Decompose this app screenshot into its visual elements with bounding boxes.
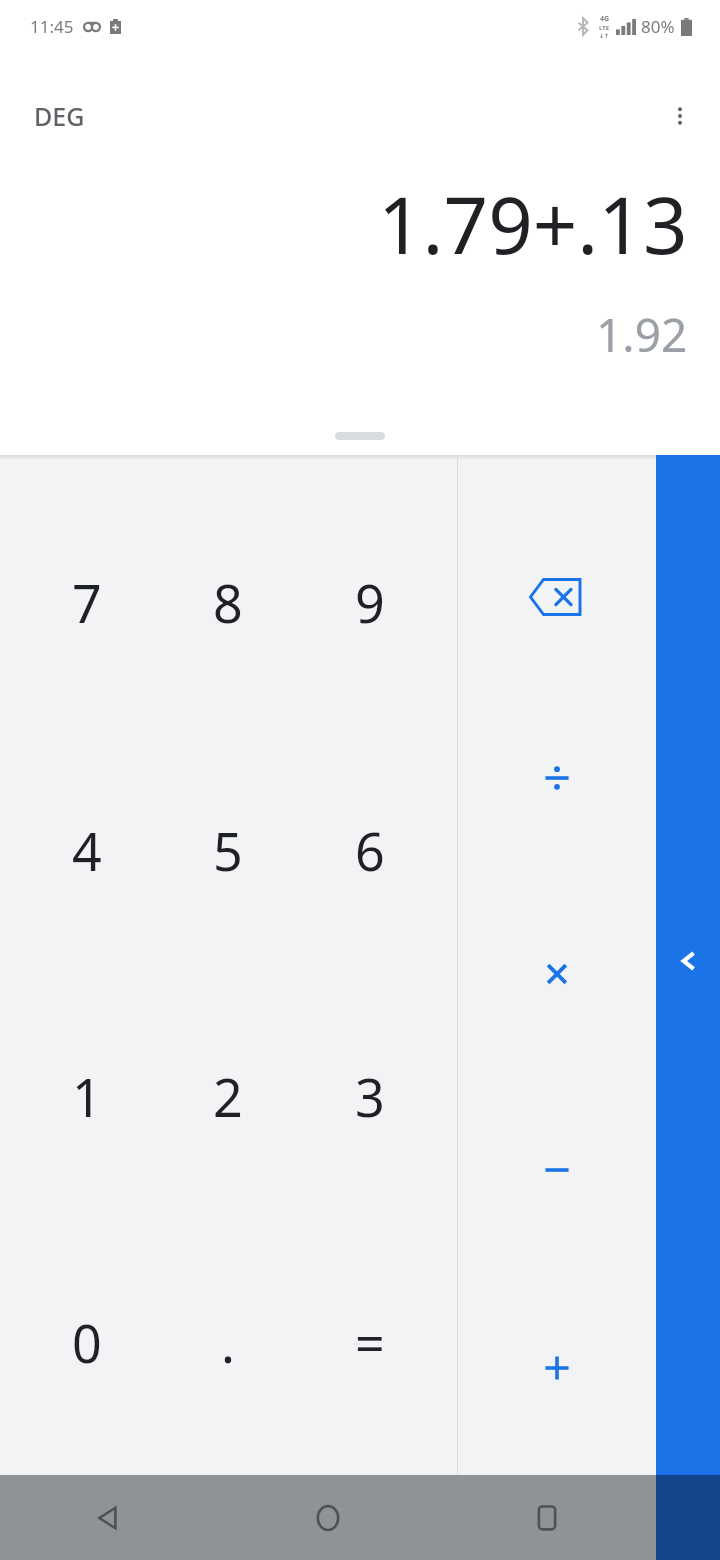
staticText: . xyxy=(221,1307,235,1378)
button[interactable]: Home xyxy=(218,1475,437,1560)
staticText: 9 xyxy=(355,567,385,638)
button[interactable]: Divide xyxy=(507,728,607,828)
button[interactable]: 5 xyxy=(169,791,287,909)
staticText: 5 xyxy=(213,815,243,886)
button[interactable]: . xyxy=(169,1283,287,1401)
button[interactable]: Plus xyxy=(507,1318,607,1418)
staticText: 8 xyxy=(213,567,243,638)
staticText: ↓↑ xyxy=(599,32,610,39)
button[interactable]: Show advanced pad xyxy=(656,455,720,1475)
staticText: 1.79+.13 xyxy=(378,171,688,277)
button[interactable]: Delete xyxy=(507,547,607,647)
button[interactable]: Multiply xyxy=(507,924,607,1024)
button[interactable]: Recents xyxy=(437,1475,656,1560)
staticText: 0 xyxy=(72,1307,102,1378)
button[interactable]: Minus xyxy=(507,1120,607,1220)
button[interactable]: 1 xyxy=(28,1037,146,1155)
button[interactable]: = xyxy=(311,1283,429,1401)
staticText: LTE xyxy=(599,24,610,32)
button[interactable]: 7 xyxy=(28,543,146,661)
staticText: = xyxy=(355,1307,385,1378)
button[interactable]: More options xyxy=(656,92,704,140)
button[interactable]: 4 xyxy=(28,791,146,909)
staticText: 3 xyxy=(355,1061,385,1132)
button[interactable]: 8 xyxy=(169,543,287,661)
button[interactable]: 6 xyxy=(311,791,429,909)
staticText: 6 xyxy=(355,815,385,886)
staticText: 80% xyxy=(641,15,675,38)
button[interactable]: 9 xyxy=(311,543,429,661)
button[interactable]: Drag handle xyxy=(335,432,385,440)
staticText: 4 xyxy=(72,815,102,886)
button[interactable]: 2 xyxy=(169,1037,287,1155)
staticText: 7 xyxy=(72,567,102,638)
staticText: 1.92 xyxy=(596,303,688,366)
button[interactable]: Back xyxy=(0,1475,218,1560)
staticText: 4G xyxy=(600,14,610,24)
staticText: 1 xyxy=(72,1061,102,1132)
button[interactable]: DEG xyxy=(0,93,97,139)
button[interactable]: 0 xyxy=(28,1283,146,1401)
staticText: 11:45 xyxy=(30,15,74,38)
staticText: DEG xyxy=(34,99,85,133)
staticText: 2 xyxy=(213,1061,243,1132)
button[interactable]: 3 xyxy=(311,1037,429,1155)
